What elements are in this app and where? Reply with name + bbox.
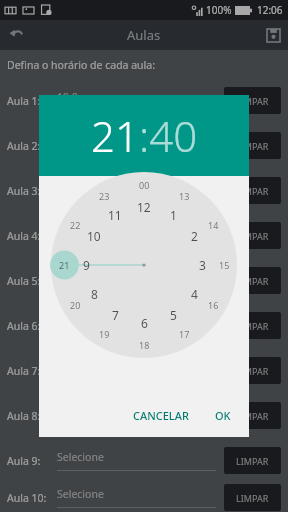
staticText: Selecione <box>57 225 104 239</box>
staticText: 23 <box>99 190 110 202</box>
staticText: 22 <box>70 219 81 231</box>
button[interactable]: Save <box>258 20 288 50</box>
staticText: Aula 6: <box>7 319 57 333</box>
staticText: LIMPAR <box>236 455 269 467</box>
staticText: Selecione <box>57 487 104 501</box>
staticText: LIMPAR <box>236 410 269 422</box>
button[interactable]: Selecione <box>57 487 216 508</box>
button[interactable]: 8 <box>83 283 105 305</box>
staticText: LIMPAR <box>236 95 269 107</box>
staticText: 1 <box>170 207 177 223</box>
staticText: 19:0 <box>57 90 78 104</box>
staticText: 21 <box>59 259 70 271</box>
button[interactable]: LIMPAR <box>224 222 281 249</box>
staticText: Aula 1: <box>7 94 57 108</box>
staticText: 12 <box>137 199 151 215</box>
button[interactable]: 18 <box>133 334 155 356</box>
staticText: LIMPAR <box>236 492 269 504</box>
staticText: Aula 10: <box>7 491 57 505</box>
button[interactable]: 12 <box>133 196 155 218</box>
button[interactable]: Undo <box>0 20 30 50</box>
button[interactable]: LIMPAR <box>224 312 281 339</box>
staticText: 16 <box>208 299 219 311</box>
button[interactable]: Selecione <box>57 135 216 156</box>
button[interactable]: 4 <box>183 283 205 305</box>
staticText: LIMPAR <box>236 275 269 287</box>
button[interactable]: 21 <box>91 107 139 164</box>
button[interactable]: 19 <box>93 323 115 345</box>
button[interactable]: 14 <box>202 214 224 236</box>
button[interactable]: 1 <box>162 204 184 226</box>
button[interactable]: 20 <box>64 294 86 316</box>
button[interactable]: 2 <box>183 225 205 247</box>
button[interactable]: 21 <box>53 254 75 276</box>
button[interactable]: 6 <box>133 312 155 334</box>
button[interactable]: LIMPAR <box>224 357 281 384</box>
button[interactable]: :40 <box>139 107 198 164</box>
staticText: Selecione <box>57 180 104 194</box>
button[interactable]: LIMPAR <box>224 447 281 474</box>
staticText: LIMPAR <box>236 185 269 197</box>
button[interactable]: 22 <box>64 214 86 236</box>
staticText: 7 <box>112 307 119 323</box>
staticText: OK <box>215 408 231 423</box>
button[interactable]: 23 <box>93 185 115 207</box>
staticText: 13 <box>179 190 190 202</box>
staticText: 14 <box>208 219 219 231</box>
staticText: Selecione <box>57 315 104 329</box>
staticText: Aula 8: <box>7 409 57 423</box>
staticText: 11 <box>108 207 122 223</box>
staticText: LIMPAR <box>236 140 269 152</box>
staticText: LIMPAR <box>236 230 269 242</box>
button[interactable]: LIMPAR <box>224 402 281 429</box>
staticText: Defina o horário de cada aula: <box>7 58 155 72</box>
button[interactable]: 15 <box>213 254 235 276</box>
staticText: Aulas <box>127 26 161 44</box>
button[interactable]: 13 <box>173 185 195 207</box>
staticText: 6 <box>141 315 148 331</box>
staticText: 8 <box>91 286 98 302</box>
button[interactable]: Selecione <box>57 180 216 201</box>
button[interactable]: LIMPAR <box>224 177 281 204</box>
button[interactable]: 3 <box>191 254 213 276</box>
button[interactable]: 9 <box>75 254 97 276</box>
button[interactable]: Selecione <box>57 225 216 246</box>
staticText: 12:06 <box>257 3 283 17</box>
staticText: 4 <box>191 286 198 302</box>
button[interactable]: LIMPAR <box>224 87 281 114</box>
staticText: 17 <box>179 328 190 340</box>
button[interactable]: CANCELAR <box>133 408 189 423</box>
button[interactable]: 7 <box>104 304 126 326</box>
button[interactable]: Selecione <box>57 450 216 471</box>
staticText: 18 <box>139 339 150 351</box>
button[interactable]: 17 <box>173 323 195 345</box>
button[interactable]: LIMPAR <box>224 484 281 511</box>
button[interactable]: LIMPAR <box>224 132 281 159</box>
button[interactable]: LIMPAR <box>224 267 281 294</box>
button[interactable]: Selecione <box>57 315 216 336</box>
button[interactable]: 10 <box>83 225 105 247</box>
button[interactable]: 00 <box>133 174 155 196</box>
staticText: Aula 5: <box>7 274 57 288</box>
button[interactable]: Selecione <box>57 405 216 426</box>
staticText: Aula 4: <box>7 229 57 243</box>
button[interactable]: 19:0 <box>57 90 216 111</box>
button[interactable]: OK <box>215 408 231 423</box>
staticText: 00 <box>139 179 150 191</box>
staticText: 15 <box>219 259 230 271</box>
staticText: Selecione <box>57 450 104 464</box>
button[interactable]: 11 <box>104 204 126 226</box>
staticText: 2 <box>191 228 198 244</box>
staticText: 19 <box>99 328 110 340</box>
staticText: Selecione <box>57 135 104 149</box>
button[interactable]: 16 <box>202 294 224 316</box>
staticText: LIMPAR <box>236 365 269 377</box>
staticText: Aula 3: <box>7 184 57 198</box>
button[interactable]: 5 <box>162 304 184 326</box>
staticText: CANCELAR <box>133 408 189 423</box>
staticText: 3 <box>199 257 206 273</box>
button[interactable]: Selecione <box>57 270 216 291</box>
